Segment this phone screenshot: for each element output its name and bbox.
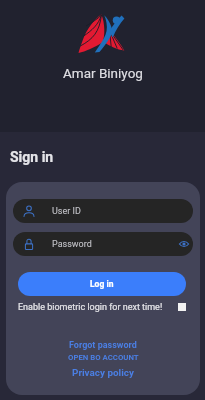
button[interactable]: Privacy policy [72,367,134,379]
staticText: User ID [52,206,81,217]
button[interactable]: Log in [18,272,186,296]
button[interactable]: Password [13,232,193,256]
staticText: Log in [90,279,114,289]
button[interactable]: User ID [13,199,193,223]
button[interactable]: OPEN BO ACCOUNT [68,353,139,362]
button[interactable]: Show password [175,235,193,253]
button[interactable]: Forgot password [69,340,137,351]
button[interactable]: Enable biometric login for next time! [18,300,186,314]
staticText: Amar Biniyog [63,65,143,81]
staticText: Enable biometric login for next time! [18,302,163,313]
button[interactable]: Sign in [10,149,54,165]
staticText: Password [52,239,92,250]
